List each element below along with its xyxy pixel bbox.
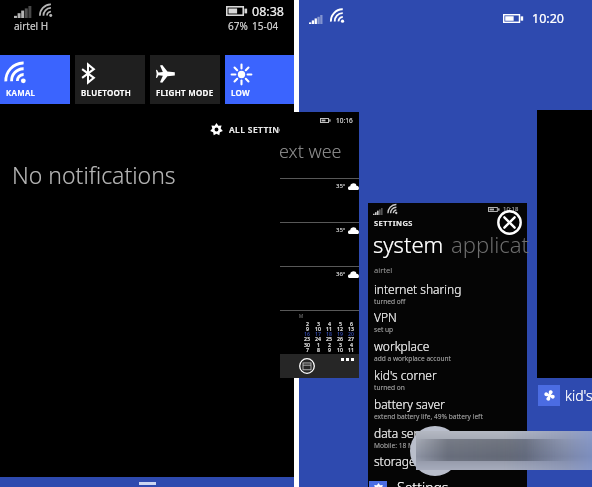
staticText: 3 [339,341,342,348]
button[interactable]: internet sharing [374,281,533,306]
staticText: 23 [304,335,310,342]
staticText: 11 [348,346,354,353]
staticText: kid's corner [374,367,437,383]
staticText: 08:38 [252,3,284,20]
staticText: 5 [339,320,342,327]
staticText: 7 [306,346,309,353]
button[interactable]: LOW [225,55,294,104]
staticText: ALL SETTINGS [229,124,291,136]
staticText: Settings [397,478,449,487]
staticText: data sen [374,425,421,441]
staticText: 2 [306,320,309,327]
staticText: ext wee [279,139,342,164]
staticText: M [299,313,304,319]
staticText: 19 [337,330,343,337]
button[interactable]: workplace [374,338,533,363]
button[interactable]: Settings [369,478,449,487]
staticText: SETTINGS [374,218,413,228]
staticText: BLUETOOTH [81,87,132,98]
staticText: 67% [228,19,248,33]
staticText: 20 [348,330,354,337]
staticText: turned off [374,297,406,306]
staticText: 13 [348,325,354,332]
staticText: airtel [374,265,393,275]
staticText: 9 [328,346,331,353]
staticText: add a workplace account [374,354,451,363]
button[interactable]: battery saver [374,396,533,421]
staticText: battery saver [374,396,445,412]
staticText: 35° [336,226,346,234]
staticText: 36° [336,270,346,278]
staticText: 15-04 [252,19,279,33]
staticText: kid's [565,386,592,405]
button[interactable]: storage [374,453,533,469]
staticText: 10:18 [503,205,519,213]
staticText: 11 [326,325,332,332]
staticText: 10 [315,325,321,332]
staticText: 16 [304,330,310,337]
staticText: 4 [350,341,353,348]
staticText: 10:16 [336,116,353,125]
staticText: 17 [315,330,321,337]
staticText: system [373,229,444,259]
staticText: 30 [304,341,310,348]
staticText: storage [374,453,416,469]
staticText: 35° [336,182,346,190]
staticText: 26 [337,335,343,342]
staticText: 10 [337,346,343,353]
button[interactable]: VPN [374,309,533,334]
button[interactable]: Close [497,210,522,235]
button[interactable]: BLUETOOTH [75,55,145,104]
button[interactable]: kid's [538,385,592,406]
button[interactable]: data sen [374,425,533,450]
staticText: No notifications [12,159,176,190]
staticText: KAMAL [6,87,36,98]
staticText: turned on [374,383,405,392]
staticText: 24 [315,335,321,342]
staticText: extend battery life, 49% battery left [374,412,483,421]
staticText: internet sharing [374,281,462,297]
staticText: 3 [317,320,320,327]
staticText: 27 [348,335,354,342]
staticText: 2 [328,341,331,348]
staticText: set up [374,325,394,334]
staticText: workplace [374,338,430,354]
button[interactable]: FLIGHT MODE [150,55,220,104]
staticText: 18 [326,330,332,337]
staticText: 8 [317,346,320,353]
staticText: 4 [328,320,331,327]
staticText: 6 [350,320,353,327]
staticText: VPN [374,309,397,325]
staticText: LOW [231,87,250,98]
button[interactable]: ALL SETTINGS [207,120,294,139]
staticText: 10:20 [532,10,564,27]
button[interactable]: KAMAL [0,55,70,104]
staticText: 1 [317,341,320,348]
staticText: 9 [306,325,309,332]
staticText: FLIGHT MODE [156,87,214,98]
staticText: Mobile: 18 M [374,441,414,450]
staticText: airtel H [14,19,49,33]
button[interactable]: kid's corner [374,367,533,392]
staticText: applicat [451,229,530,259]
staticText: 12 [337,325,343,332]
staticText: 25 [326,335,332,342]
